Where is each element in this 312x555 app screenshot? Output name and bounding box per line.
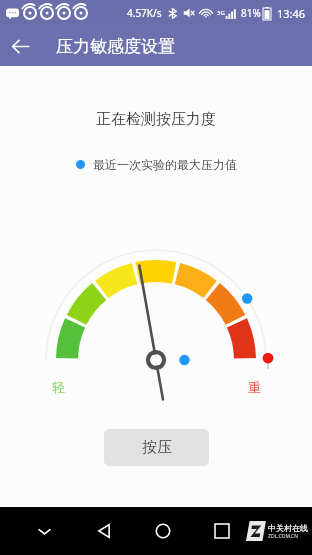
staticText: 重: [248, 379, 261, 395]
staticText: 轻: [52, 379, 65, 395]
button[interactable]: Back: [0, 26, 40, 66]
button[interactable]: 按压: [104, 429, 209, 466]
button[interactable]: Back: [84, 511, 124, 551]
staticText: 最近一次实验的最大压力值: [93, 157, 237, 172]
staticText: 压力敏感度设置: [56, 36, 175, 57]
staticText: 正在检测按压力度: [96, 110, 216, 129]
button[interactable]: Hide: [24, 511, 64, 551]
staticText: 按压: [142, 438, 172, 457]
staticText: 81%: [241, 6, 261, 20]
staticText: 4.57K/s: [127, 6, 162, 20]
staticText: 3G: [217, 9, 225, 17]
staticText: 中关村在线: [268, 523, 308, 533]
button[interactable]: Home: [143, 511, 183, 551]
staticText: 13:46: [277, 6, 306, 21]
staticText: ZOL.COM.CN: [268, 533, 298, 540]
button[interactable]: Recents: [202, 511, 242, 551]
